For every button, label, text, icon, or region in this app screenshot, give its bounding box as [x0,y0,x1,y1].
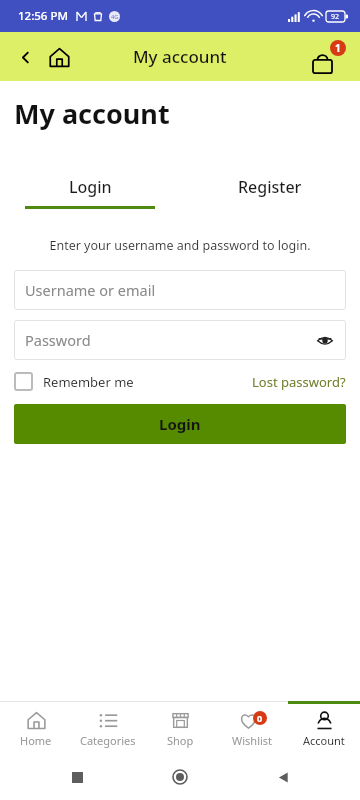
staticText: Username or email [25,280,156,300]
staticText: Login [69,176,112,198]
staticText: 4G [111,13,119,20]
staticText: Enter your username and password to logi… [0,237,360,254]
staticText: 0 [257,712,263,724]
staticText: Login [159,414,201,434]
button[interactable]: Register [180,176,360,209]
staticText: Account [303,733,345,748]
button[interactable]: 0 [216,701,288,753]
button[interactable]: Lost password? [252,373,346,391]
staticText: 12:56 PM [18,8,69,24]
staticText: Shop [167,733,194,748]
button[interactable]: Categories [72,701,144,753]
button[interactable]: Login [14,404,346,444]
staticText: My account [133,45,227,68]
staticText: Categories [80,733,136,748]
staticText: My account [14,95,170,132]
button[interactable]: Back [266,760,300,794]
button[interactable]: Login [0,176,180,209]
button[interactable]: Cart [312,40,346,74]
button[interactable]: Back [12,44,38,70]
staticText: 92 [331,12,340,22]
button[interactable]: Show password [314,329,336,351]
button[interactable]: Remember me [14,372,134,391]
button[interactable]: Account [288,701,360,753]
button[interactable]: Recents [60,760,94,794]
staticText: Remember me [43,373,134,391]
button[interactable]: Shop [144,701,216,753]
button[interactable]: Username or email [14,270,346,310]
staticText: 1 [335,41,341,55]
button[interactable]: Home [0,701,72,753]
staticText: Password [25,330,91,350]
button[interactable]: Password [14,320,346,360]
staticText: Register [238,176,302,198]
staticText: Wishlist [232,733,273,748]
staticText: Home [20,733,52,748]
button[interactable]: Home [163,760,197,794]
button[interactable]: Home [44,42,74,72]
staticText: Lost password? [252,373,346,391]
